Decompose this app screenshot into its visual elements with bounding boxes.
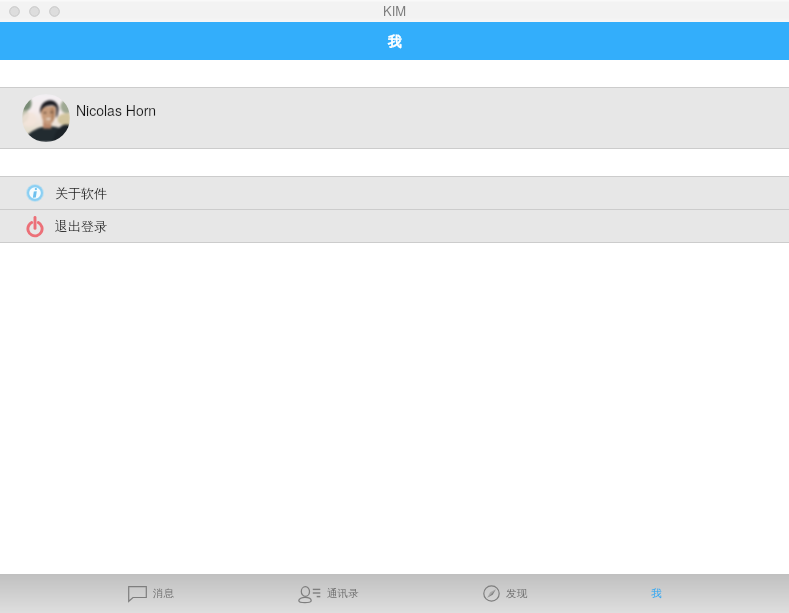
staticText: Nicolas Horn: [76, 100, 157, 120]
button[interactable]: 通讯录: [298, 574, 359, 613]
staticText: 我: [651, 587, 662, 600]
button[interactable]: 我: [651, 574, 662, 613]
staticText: 发现: [506, 587, 527, 600]
staticText: KIM: [383, 1, 407, 20]
button[interactable]: 消息: [128, 574, 174, 613]
button[interactable]: 关于软件: [0, 177, 789, 209]
button[interactable]: Profile photo: [0, 88, 789, 148]
staticText: 我: [388, 33, 402, 50]
staticText: 退出登录: [55, 218, 107, 234]
other: Profile photo: [22, 94, 70, 142]
button[interactable]: 退出登录: [0, 210, 789, 242]
button[interactable]: 发现: [483, 574, 527, 613]
staticText: 通讯录: [327, 587, 359, 600]
staticText: 消息: [153, 587, 174, 600]
staticText: 关于软件: [55, 185, 107, 201]
